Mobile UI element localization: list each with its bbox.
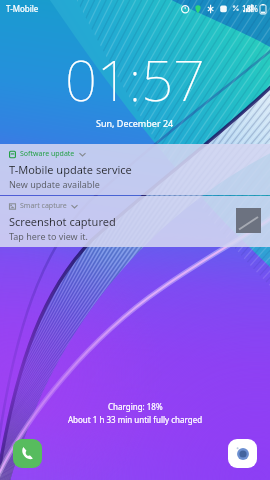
staticText: Screenshot captured	[9, 214, 116, 229]
staticText: 01:57	[65, 41, 205, 117]
staticText: Sun, December 24	[96, 117, 174, 129]
button[interactable]: Phone	[13, 439, 42, 468]
staticText: Charging: 18%	[108, 401, 163, 412]
staticText: 18%	[242, 3, 258, 14]
staticText: New update available	[9, 178, 100, 190]
button[interactable]: Software update	[0, 144, 270, 195]
staticText: Software update	[20, 149, 75, 159]
button[interactable]: Camera	[228, 439, 257, 468]
staticText: T-Mobile	[6, 3, 39, 14]
staticText: T-Mobile update service	[9, 162, 132, 177]
staticText: About 1 h 33 min until fully charged	[68, 414, 203, 425]
button[interactable]: Smart capture	[0, 196, 270, 247]
staticText: Tap here to view it.	[9, 230, 89, 242]
staticText: Smart capture	[20, 201, 67, 211]
